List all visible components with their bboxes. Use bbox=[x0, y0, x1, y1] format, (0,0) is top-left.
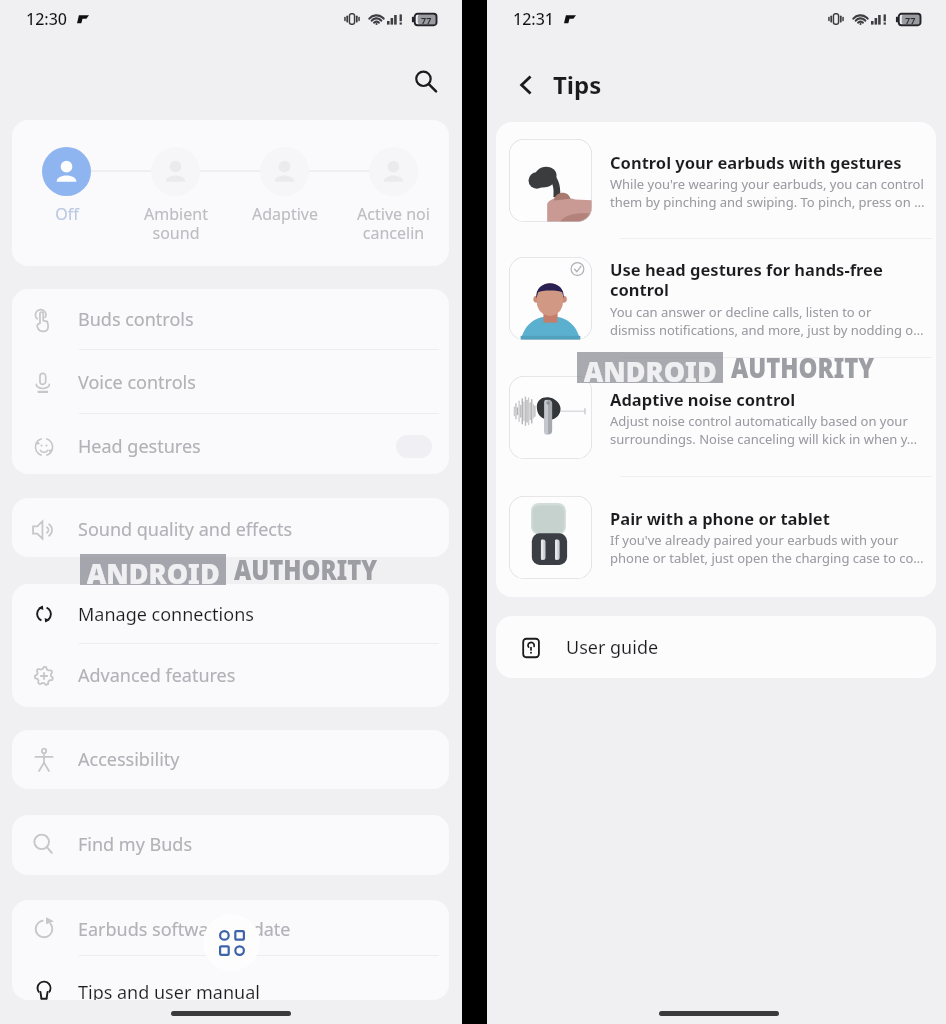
staticText: If you've already paired your earbuds wi… bbox=[610, 531, 927, 567]
button[interactable]: Accessibility bbox=[12, 730, 449, 789]
staticText: ANDROID bbox=[584, 352, 717, 383]
staticText: Control your earbuds with gestures bbox=[610, 151, 902, 173]
button[interactable]: App shortcut bbox=[203, 914, 260, 971]
button[interactable]: Search bbox=[404, 60, 446, 102]
staticText: Buds controls bbox=[78, 307, 194, 332]
staticText: Sound quality and effects bbox=[78, 517, 293, 542]
staticText: 77 bbox=[421, 14, 432, 26]
staticText: Earbuds software update bbox=[78, 917, 291, 942]
button[interactable]: Off bbox=[12, 147, 121, 225]
staticText: Manage connections bbox=[78, 602, 254, 627]
button[interactable]: Earbuds software update bbox=[12, 902, 449, 956]
button[interactable]: Control your earbuds with gestures bbox=[496, 122, 936, 239]
staticText: AUTHORITY bbox=[731, 348, 875, 386]
button[interactable]: Manage connections bbox=[12, 584, 449, 644]
staticText: Voice controls bbox=[78, 370, 196, 395]
staticText: Find my Buds bbox=[78, 832, 193, 857]
button[interactable]: Voice controls bbox=[12, 350, 449, 414]
staticText: 77 bbox=[905, 14, 916, 26]
staticText: Use head gestures for hands-free control bbox=[610, 258, 927, 301]
button[interactable]: Active noi cancelin bbox=[339, 147, 448, 244]
staticText: Advanced features bbox=[78, 663, 236, 688]
button[interactable]: Toggle head gestures bbox=[396, 435, 432, 458]
button[interactable]: Back bbox=[508, 67, 544, 103]
staticText: ANDROID bbox=[87, 554, 220, 585]
button[interactable]: Buds controls bbox=[12, 289, 449, 350]
staticText: 12:30 bbox=[26, 8, 67, 30]
staticText: You can answer or decline calls, listen … bbox=[610, 303, 924, 339]
button[interactable]: Pair with a phone or tablet bbox=[496, 477, 936, 597]
staticText: Active noi cancelin bbox=[357, 203, 430, 244]
staticText: Pair with a phone or tablet bbox=[610, 507, 830, 529]
staticText: Off bbox=[55, 203, 79, 225]
staticText: Adjust noise control automatically based… bbox=[610, 412, 927, 448]
staticText: Accessibility bbox=[78, 747, 180, 772]
staticText: Head gestures bbox=[78, 434, 201, 459]
staticText: AUTHORITY bbox=[234, 550, 378, 588]
button[interactable]: Use head gestures for hands-free control bbox=[496, 239, 936, 358]
button[interactable]: Tips and user manual bbox=[12, 963, 449, 1000]
button[interactable]: Head gestures bbox=[12, 417, 449, 474]
button[interactable]: Sound quality and effects bbox=[12, 500, 449, 557]
staticText: Ambient sound bbox=[144, 203, 208, 244]
button[interactable]: Advanced features bbox=[12, 644, 449, 707]
button[interactable]: Ambient sound bbox=[121, 147, 230, 244]
staticText: User guide bbox=[566, 635, 659, 660]
staticText: Tips and user manual bbox=[78, 980, 260, 1000]
staticText: Adaptive bbox=[252, 203, 318, 225]
button[interactable]: User guide bbox=[496, 616, 936, 678]
staticText: While you're wearing your earbuds, you c… bbox=[610, 175, 927, 211]
button[interactable]: Adaptive noise control bbox=[496, 358, 936, 477]
button[interactable]: Find my Buds bbox=[12, 815, 449, 874]
staticText: Adaptive noise control bbox=[610, 388, 796, 410]
button[interactable]: Adaptive bbox=[230, 147, 339, 225]
staticText: 12:31 bbox=[513, 8, 554, 30]
staticText: Tips bbox=[553, 68, 602, 101]
